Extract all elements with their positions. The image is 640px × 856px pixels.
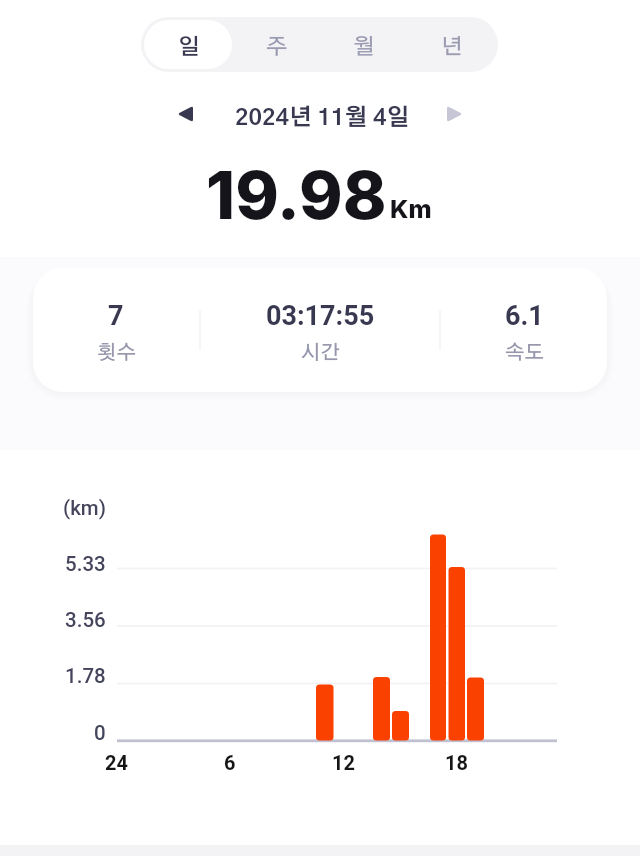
staticText: 12 — [332, 751, 355, 774]
staticText: 일 — [178, 36, 200, 58]
staticText: 03:17:55 — [266, 300, 375, 332]
button[interactable]: 년 — [408, 19, 496, 72]
button[interactable]: 7 — [33, 269, 206, 392]
button[interactable]: Previous day — [158, 92, 212, 136]
staticText: 6.1 — [505, 300, 544, 332]
staticText: 0 — [94, 721, 106, 745]
staticText: 월 — [353, 36, 375, 58]
staticText: 횟수 — [97, 343, 136, 363]
button[interactable]: 주 — [233, 19, 321, 72]
staticText: 1.78 — [65, 664, 106, 688]
staticText: 속도 — [505, 343, 544, 363]
staticText: 2024년 11월 4일 — [235, 107, 410, 130]
staticText: 7 — [108, 300, 124, 332]
staticText: 18 — [445, 751, 468, 774]
staticText: Km — [390, 194, 432, 224]
staticText: 시간 — [301, 343, 340, 363]
staticText: 년 — [441, 36, 463, 58]
button[interactable]: 월 — [320, 19, 408, 72]
button[interactable]: Next day — [427, 92, 481, 136]
staticText: (km) — [63, 496, 106, 520]
button[interactable]: 03:17:55 — [230, 269, 410, 392]
staticText: 19.98 — [206, 155, 387, 235]
staticText: 6 — [224, 751, 236, 774]
staticText: 5.33 — [65, 552, 106, 576]
staticText: 주 — [266, 36, 288, 58]
button[interactable]: 6.1 — [434, 269, 607, 392]
button[interactable]: 일 — [145, 19, 233, 72]
staticText: 24 — [105, 751, 128, 774]
staticText: 3.56 — [65, 608, 106, 632]
